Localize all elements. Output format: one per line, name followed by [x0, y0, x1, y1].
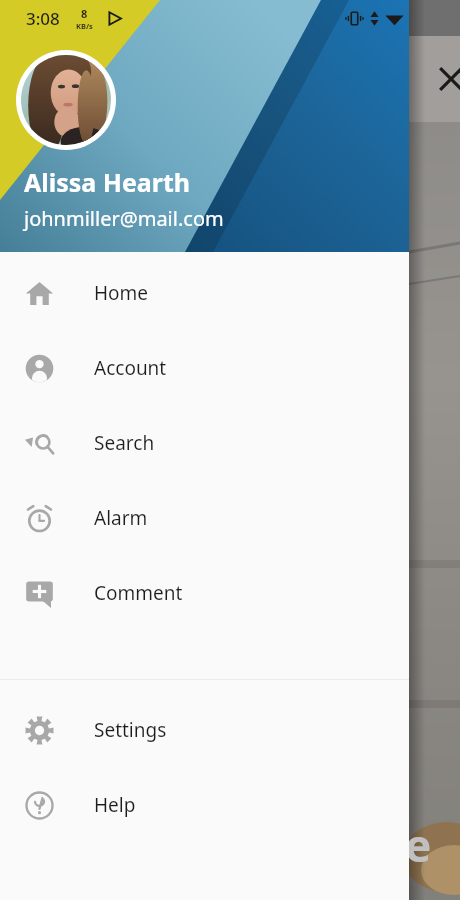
staticText: 3:08 [26, 7, 60, 30]
button[interactable]: Home [0, 255, 409, 330]
staticText: Alissa Hearth [24, 165, 191, 199]
staticText: Search [94, 430, 155, 456]
button[interactable]: Alarm [0, 480, 409, 555]
staticText: Settings [94, 717, 167, 743]
button[interactable]: Search [0, 405, 409, 480]
button[interactable]: Profile photo [16, 50, 116, 150]
button[interactable]: Settings [0, 692, 409, 767]
button[interactable]: Help [0, 767, 409, 842]
staticText: e [405, 815, 432, 865]
staticText: Home [94, 280, 149, 306]
button[interactable]: Account [0, 330, 409, 405]
staticText: Account [94, 355, 167, 381]
staticText: 8 [81, 6, 88, 21]
staticText: Help [94, 792, 136, 818]
button[interactable]: Comment [0, 555, 409, 630]
staticText: KB/s [76, 21, 93, 31]
staticText: Comment [94, 580, 183, 606]
button[interactable]: Close [432, 60, 460, 98]
staticText: Alarm [94, 505, 148, 531]
staticText: johnmiller@mail.com [24, 205, 224, 232]
